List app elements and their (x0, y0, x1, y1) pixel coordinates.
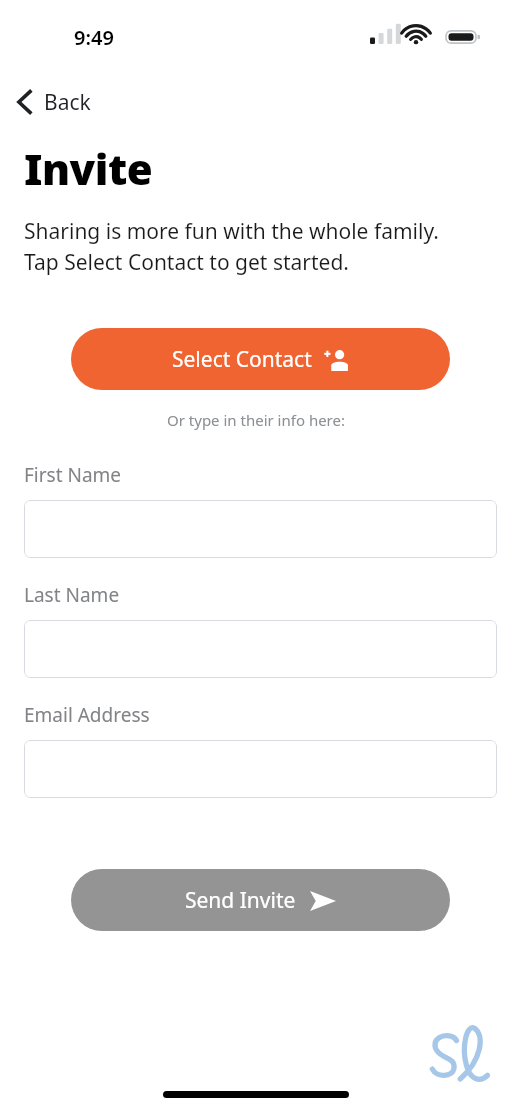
button[interactable]: Send Invite (71, 869, 450, 931)
staticText: First Name (24, 462, 122, 488)
staticText: Sharing is more fun with the whole famil… (24, 217, 439, 276)
button[interactable]: Select Contact (71, 328, 450, 390)
button[interactable] (24, 620, 497, 678)
other: Send (310, 891, 336, 911)
staticText: Invite (24, 140, 153, 197)
staticText: 9:49 (74, 24, 114, 51)
staticText: Select Contact (172, 345, 312, 374)
button[interactable]: Back (8, 80, 99, 124)
button[interactable] (24, 500, 497, 558)
other: Add contact (324, 349, 350, 371)
staticText: Last Name (24, 582, 120, 608)
staticText: Or type in their info here: (167, 410, 345, 430)
staticText: Send Invite (185, 886, 296, 915)
button[interactable] (24, 740, 497, 798)
staticText: Email Address (24, 702, 150, 728)
staticText: Back (44, 88, 91, 117)
